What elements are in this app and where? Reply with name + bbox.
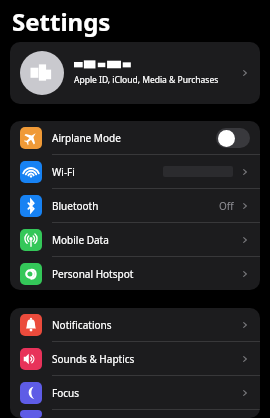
button[interactable]: Personal Hotspot xyxy=(10,257,260,290)
other: Open xyxy=(240,354,250,364)
staticText: Apple ID, iCloud, Media & Purchases xyxy=(74,74,219,86)
button[interactable]: Apple ID, iCloud, Media & Purchases xyxy=(10,42,260,104)
button[interactable]: Notifications xyxy=(10,308,260,341)
staticText: Bluetooth xyxy=(52,199,99,213)
staticText: Personal Hotspot xyxy=(52,267,134,281)
staticText: Sounds & Haptics xyxy=(52,352,135,366)
button[interactable]: Bluetooth xyxy=(10,189,260,222)
button[interactable]: Sounds & Haptics xyxy=(10,342,260,375)
other: Open xyxy=(240,320,250,330)
button[interactable]: Airplane Mode xyxy=(10,121,260,154)
staticText: Notifications xyxy=(52,318,112,332)
button[interactable]: Mobile Data xyxy=(10,223,260,256)
staticText: Wi-Fi xyxy=(52,165,75,179)
staticText: Off xyxy=(219,199,234,213)
button[interactable]: Focus xyxy=(10,376,260,409)
staticText: Mobile Data xyxy=(52,233,109,247)
other: Open xyxy=(240,388,250,398)
other: Open xyxy=(240,269,250,279)
button[interactable] xyxy=(10,410,260,418)
button[interactable]: Wi-Fi xyxy=(10,155,260,188)
staticText: Airplane Mode xyxy=(52,131,121,145)
staticText: Focus xyxy=(52,386,80,400)
other: Open xyxy=(240,235,250,245)
button[interactable]: Airplane Mode toggle, off xyxy=(216,128,250,148)
other: Open xyxy=(240,201,250,211)
other: Open xyxy=(240,68,250,78)
staticText: Settings xyxy=(12,5,111,38)
other: Open xyxy=(240,167,250,177)
